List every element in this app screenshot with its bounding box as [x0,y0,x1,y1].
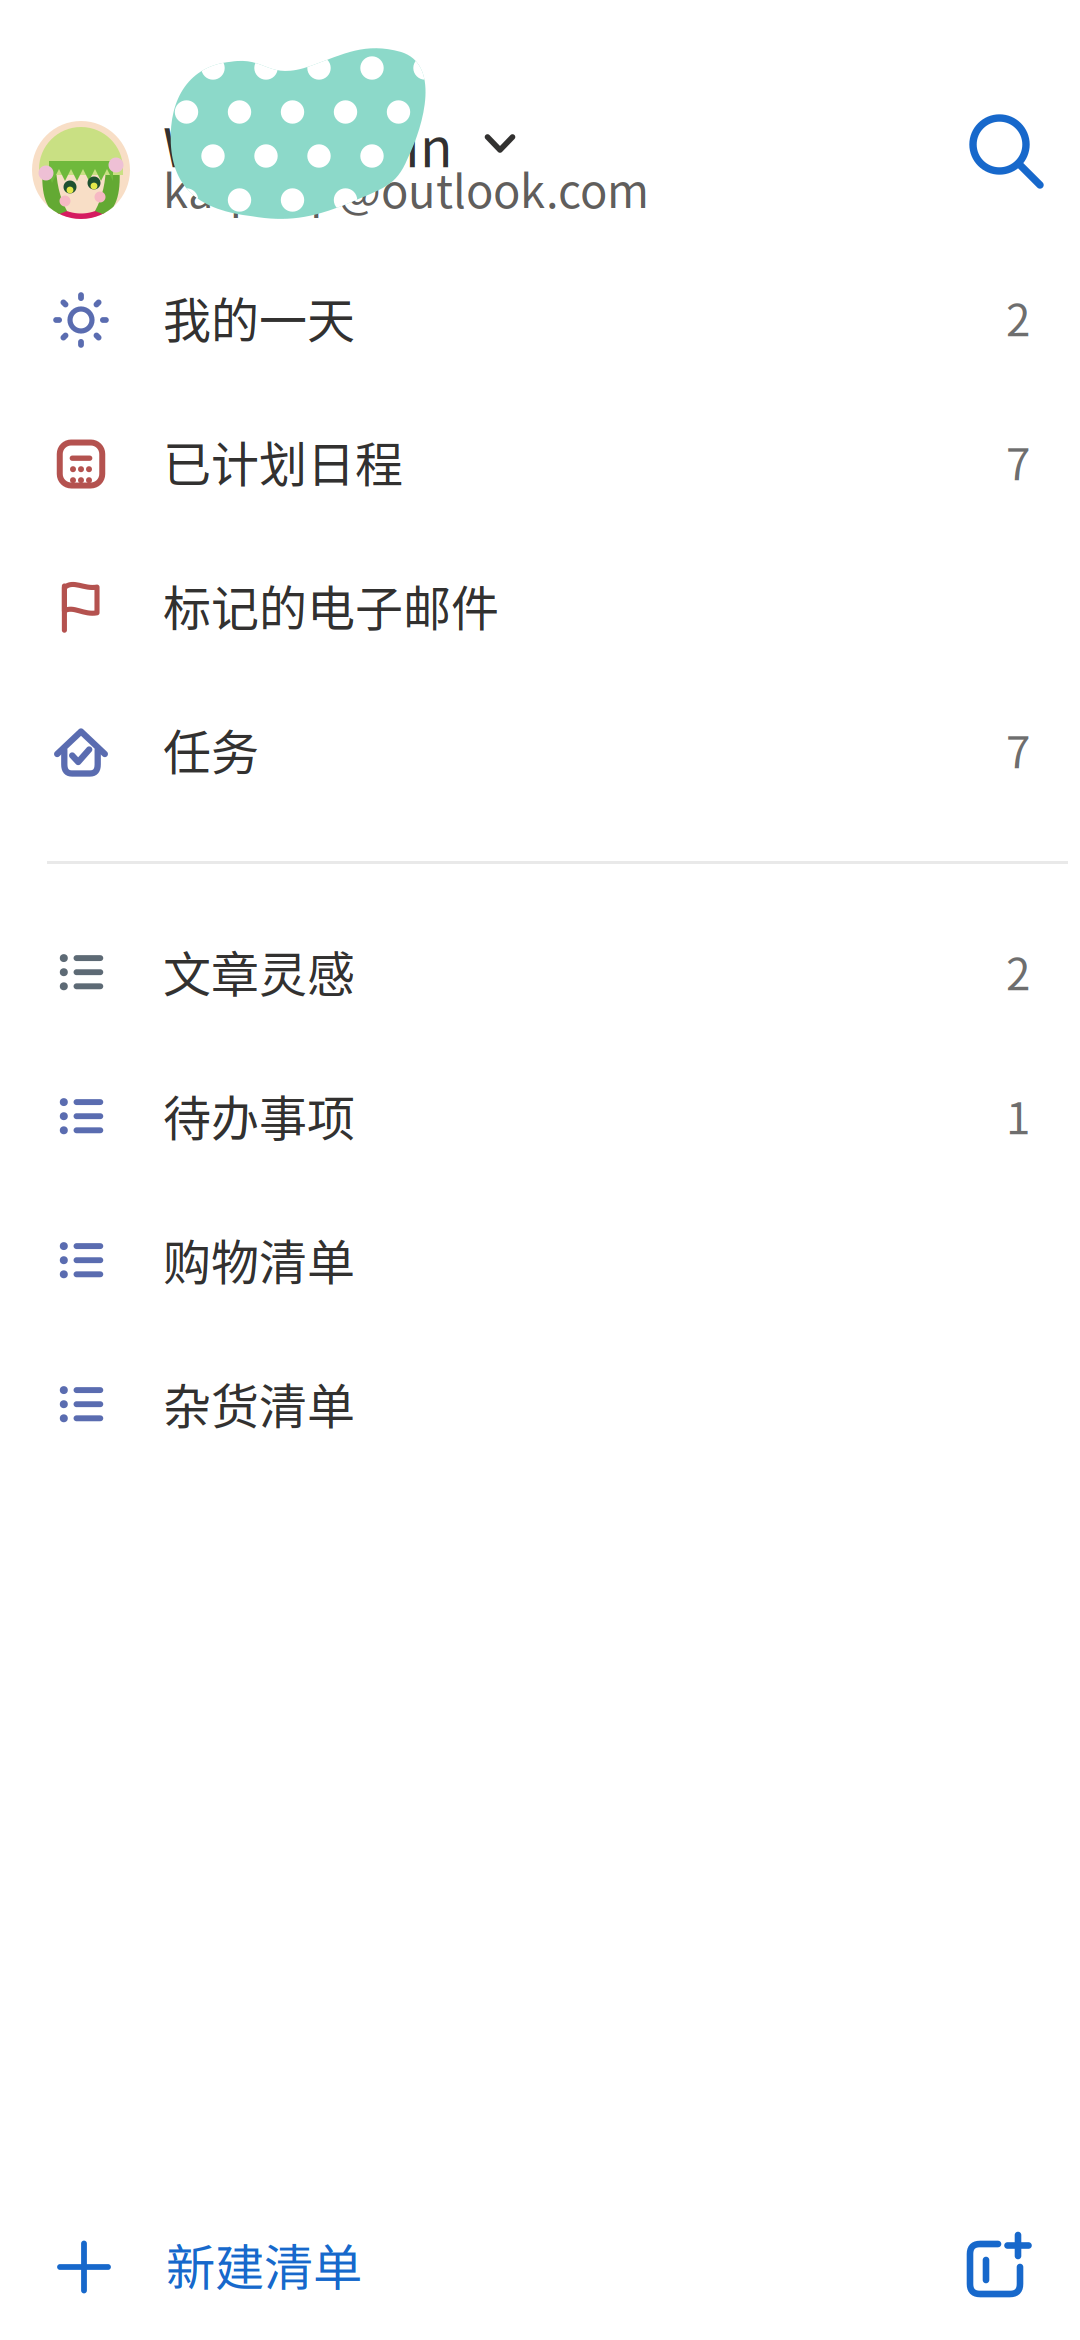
button[interactable]: 搜索 [969,132,1080,208]
staticText: 文章灵感 [163,936,355,1006]
button[interactable]: 杂货清单 [0,1331,1080,1475]
staticText: kaqiupp@outlook.com [163,155,649,221]
button[interactable]: 我的一天 [0,245,1080,389]
staticText: 待办事项 [163,1080,355,1150]
staticText: Wang Yubin [163,105,453,183]
staticText: 2 [1006,939,1030,1003]
staticText: 7 [1006,717,1030,781]
staticText: 1 [1006,1083,1030,1147]
staticText: 2 [1006,285,1030,349]
button[interactable]: Wang Yubin [0,119,649,221]
staticText: 已计划日程 [163,426,403,496]
button[interactable]: 新建组 [958,2194,1080,2340]
staticText: 新建清单 [166,2228,362,2300]
staticText: 我的一天 [163,282,355,352]
button[interactable]: 购物清单 [0,1187,1080,1331]
staticText: 购物清单 [163,1224,355,1294]
button[interactable]: 待办事项 [0,1043,1080,1187]
button[interactable]: 文章灵感 [0,899,1080,1043]
staticText: 标记的电子邮件 [163,570,499,640]
staticText: 任务 [163,714,259,784]
button[interactable]: 新建清单 [0,2194,362,2340]
button[interactable]: 标记的电子邮件 [0,533,1080,677]
button[interactable]: 任务 [0,677,1080,821]
staticText: 杂货清单 [163,1368,355,1438]
staticText: 7 [1006,429,1030,493]
button[interactable]: 已计划日程 [0,389,1080,533]
